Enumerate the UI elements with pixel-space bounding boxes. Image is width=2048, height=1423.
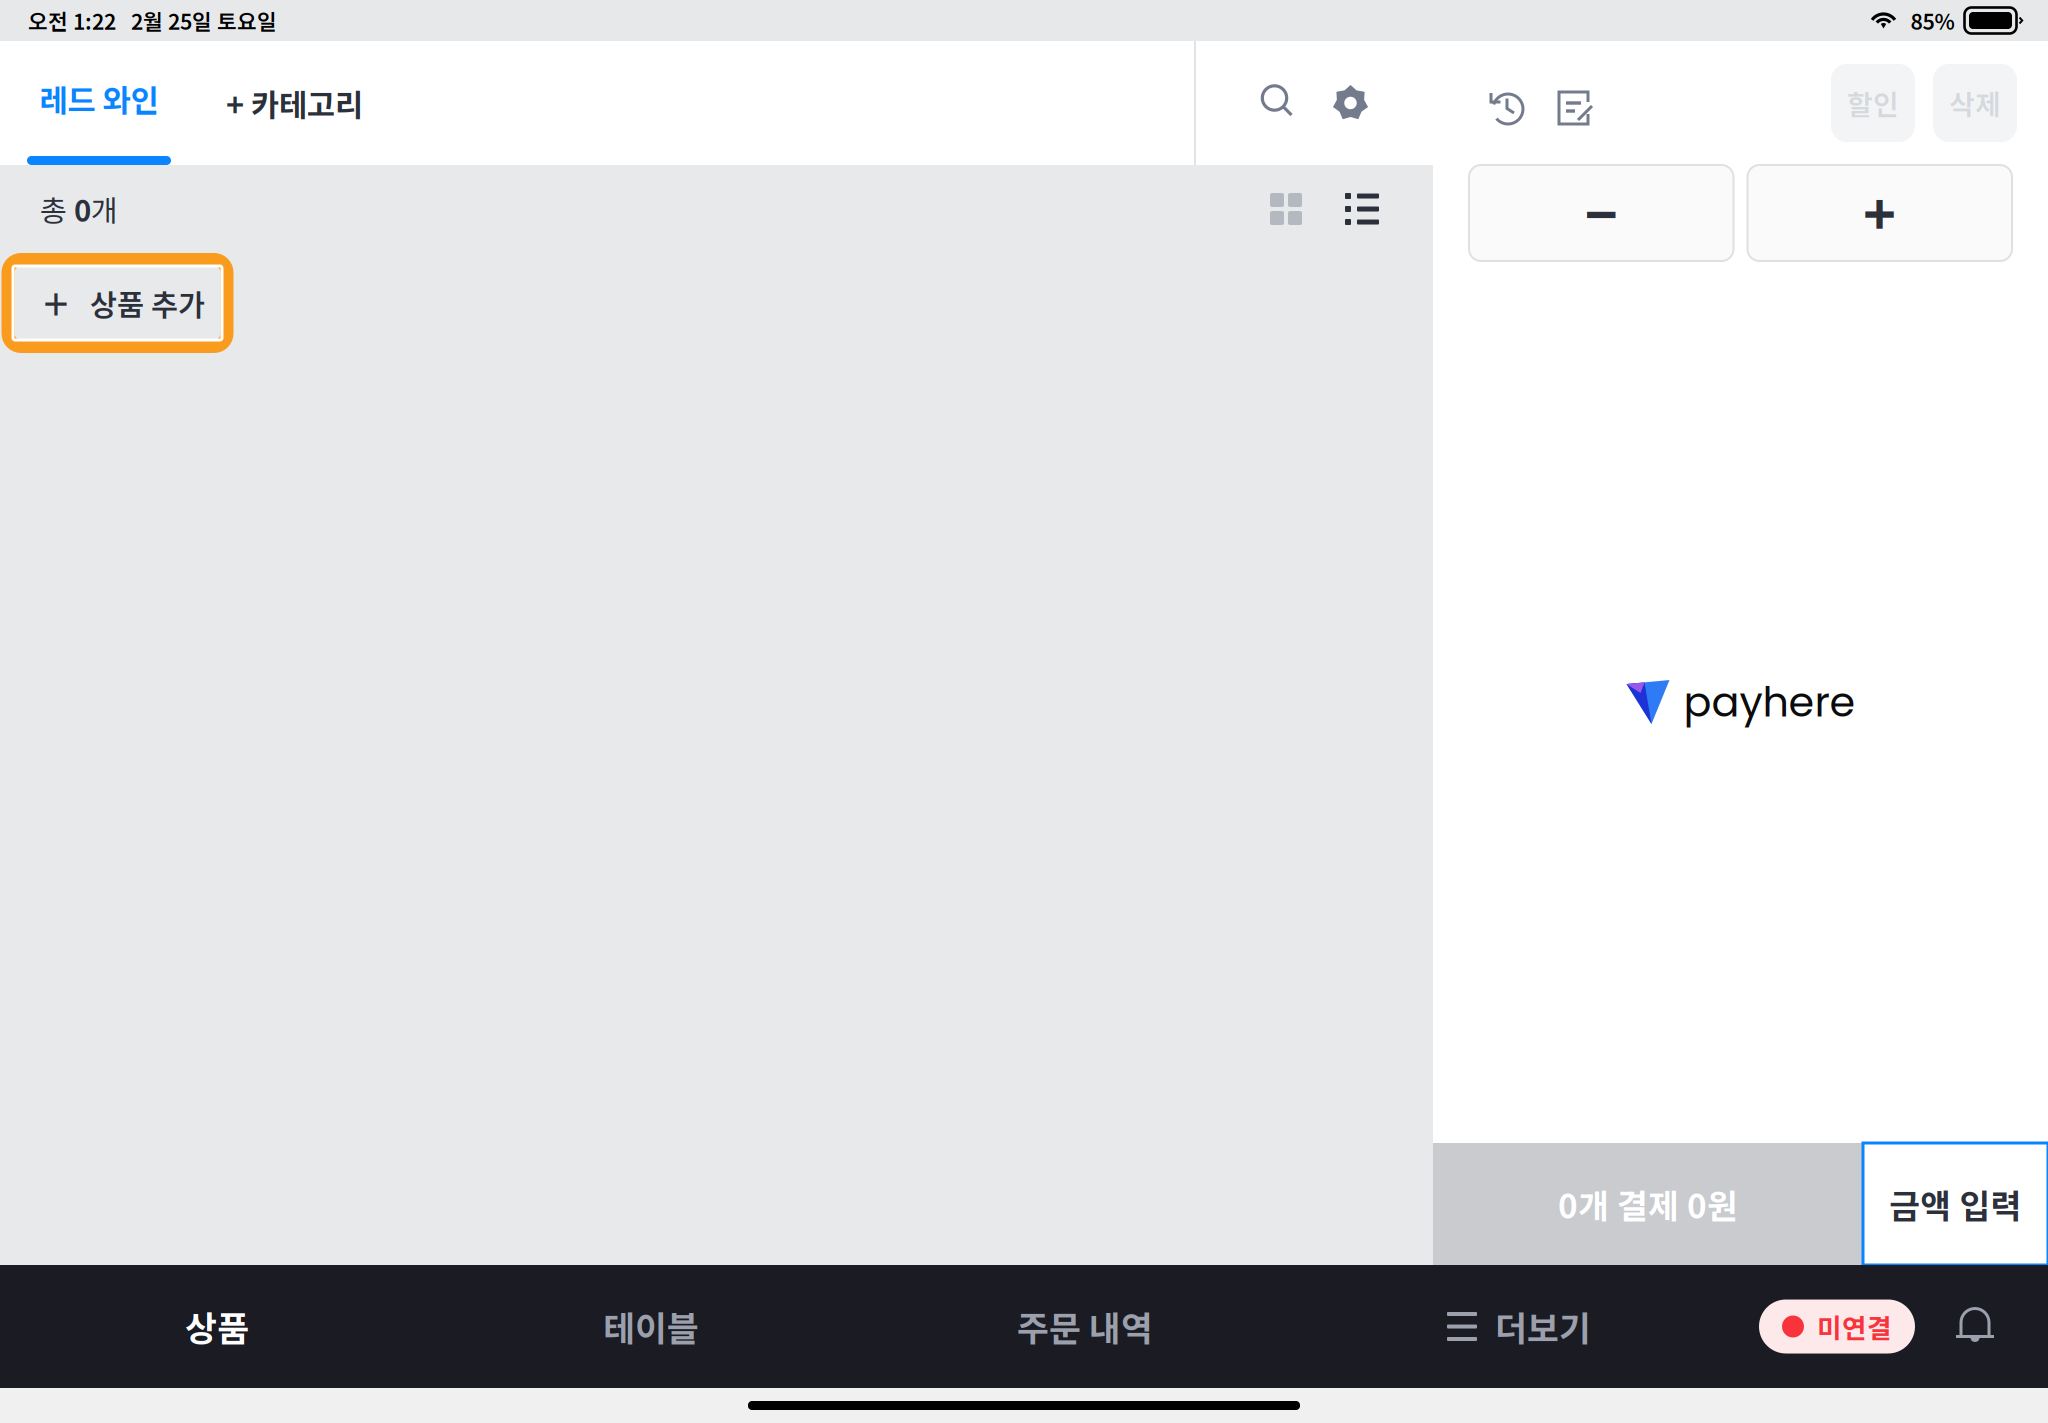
- button[interactable]: 상품: [0, 1265, 434, 1388]
- button[interactable]: Memo: [1546, 72, 1604, 144]
- button[interactable]: 삭제: [1933, 64, 2017, 142]
- button[interactable]: +: [1, 253, 234, 353]
- staticText: payhere: [1683, 673, 1855, 731]
- button[interactable]: 주문 내역: [868, 1265, 1302, 1388]
- button[interactable]: Order history: [1478, 72, 1536, 144]
- button[interactable]: Search: [1242, 41, 1314, 165]
- staticText: 금액 입력: [1889, 1180, 2021, 1228]
- staticText: 오전 1:22 2월 25일 토요일: [28, 5, 277, 36]
- staticText: 총: [40, 188, 74, 230]
- staticText: 0개 결제 0원: [1558, 1180, 1738, 1228]
- staticText: 85%: [1910, 5, 1954, 36]
- staticText: 상품 추가: [90, 282, 205, 324]
- button[interactable]: 레드 와인: [0, 41, 198, 165]
- button[interactable]: Grid view: [1264, 187, 1308, 231]
- button[interactable]: Decrease: [1469, 165, 1733, 261]
- staticText: +: [43, 273, 69, 333]
- button[interactable]: Notifications: [1945, 1295, 2005, 1357]
- button[interactable]: 테이블: [434, 1265, 868, 1388]
- staticText: + 카테고리: [226, 81, 363, 125]
- staticText: 주문 내역: [1017, 1301, 1153, 1352]
- button[interactable]: List view: [1340, 187, 1384, 231]
- staticText: 개: [91, 188, 118, 230]
- button[interactable]: Increase: [1747, 165, 2012, 261]
- button[interactable]: + 카테고리: [198, 41, 391, 165]
- button[interactable]: 금액 입력: [1863, 1143, 2048, 1265]
- staticText: 더보기: [1495, 1301, 1591, 1352]
- button[interactable]: 미연결: [1759, 1299, 1915, 1353]
- staticText: 미연결: [1817, 1307, 1892, 1346]
- button[interactable]: 할인: [1831, 64, 1915, 142]
- staticText: +: [1863, 174, 1897, 252]
- staticText: 상품: [185, 1301, 249, 1352]
- button[interactable]: 더보기: [1302, 1265, 1736, 1388]
- staticText: 0: [74, 188, 91, 230]
- staticText: 레드 와인: [39, 76, 158, 121]
- staticText: 할인: [1847, 83, 1899, 123]
- staticText: 테이블: [603, 1301, 699, 1352]
- staticText: −: [1584, 174, 1618, 252]
- staticText: 삭제: [1949, 83, 2001, 123]
- button[interactable]: Settings: [1314, 41, 1386, 165]
